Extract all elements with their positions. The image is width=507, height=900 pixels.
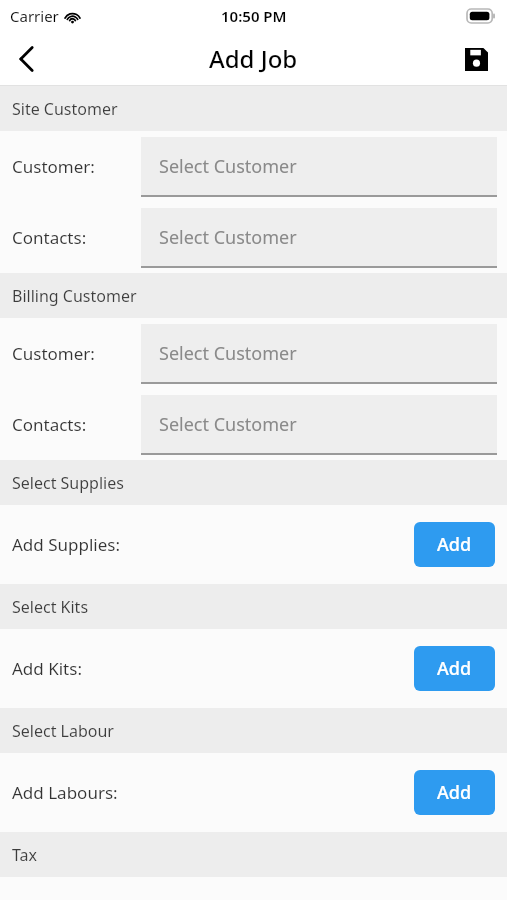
staticText: Select Customer [159,341,297,366]
button[interactable]: Customer: [0,131,507,202]
staticText: Select Customer [159,225,297,250]
staticText: Add Labours: [12,781,118,804]
staticText: Select Customer [159,412,297,437]
staticText: Carrier [10,6,59,26]
staticText: Tax [12,844,38,866]
staticText: Add [437,656,472,681]
staticText: Contacts: [12,226,87,249]
staticText: Billing Customer [12,285,137,307]
staticText: Add [437,532,472,557]
staticText: Select Customer [159,154,297,179]
button[interactable]: Add [414,770,495,815]
staticText: Contacts: [12,413,87,436]
staticText: Site Customer [12,98,118,120]
button[interactable]: Contacts: [0,389,507,460]
button[interactable]: Save [451,34,501,84]
staticText: Add [437,780,472,805]
button[interactable]: Contacts: [0,202,507,273]
staticText: Customer: [12,155,95,178]
staticText: Select Supplies [12,472,124,494]
staticText: Add Kits: [12,657,82,680]
button[interactable]: Back [0,33,52,85]
button[interactable]: Customer: [0,318,507,389]
staticText: Select Kits [12,596,89,618]
staticText: Add Supplies: [12,533,121,556]
staticText: Customer: [12,342,95,365]
button[interactable]: Add [414,522,495,567]
staticText: Select Labour [12,720,114,742]
staticText: 10:50 PM [221,6,287,26]
staticText: Add Job [209,42,298,75]
button[interactable]: Add [414,646,495,691]
